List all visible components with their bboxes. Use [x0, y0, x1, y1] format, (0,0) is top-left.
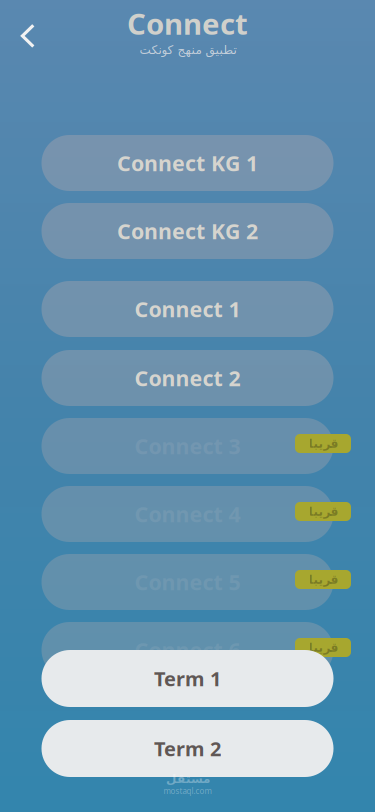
staticText: mostaql.com [163, 786, 211, 796]
button[interactable]: Term 2 [41, 720, 333, 777]
button[interactable]: Connect 3 [41, 418, 333, 474]
staticText: Term 1 [154, 665, 221, 692]
staticText: قريبا [308, 505, 338, 518]
staticText: Connect 1 [134, 295, 240, 323]
button[interactable]: Connect KG 2 [41, 203, 333, 259]
button[interactable]: Connect 2 [41, 350, 333, 406]
button[interactable]: Connect 5 [41, 554, 333, 610]
staticText: Connect [127, 4, 248, 43]
staticText: Connect 3 [134, 432, 240, 460]
staticText: Term 2 [154, 735, 221, 762]
staticText: تطبيق منهج كونكت [139, 43, 236, 57]
staticText: قريبا [308, 641, 338, 654]
button[interactable]: Connect 6 [41, 622, 333, 678]
staticText: Connect KG 1 [117, 149, 258, 177]
button[interactable]: Term 1 [41, 650, 333, 707]
staticText: مستقل [165, 772, 209, 786]
button[interactable]: Back [6, 14, 50, 58]
staticText: قريبا [308, 573, 338, 586]
button[interactable]: Connect 4 [41, 486, 333, 542]
staticText: قريبا [308, 437, 338, 450]
button[interactable]: Connect 1 [41, 281, 333, 337]
staticText: Connect 2 [134, 364, 240, 392]
staticText: Connect KG 2 [117, 217, 258, 245]
staticText: Connect 4 [134, 500, 240, 528]
staticText: Connect 5 [134, 568, 240, 596]
button[interactable]: Connect KG 1 [41, 135, 333, 191]
staticText: Connect 6 [134, 636, 240, 664]
